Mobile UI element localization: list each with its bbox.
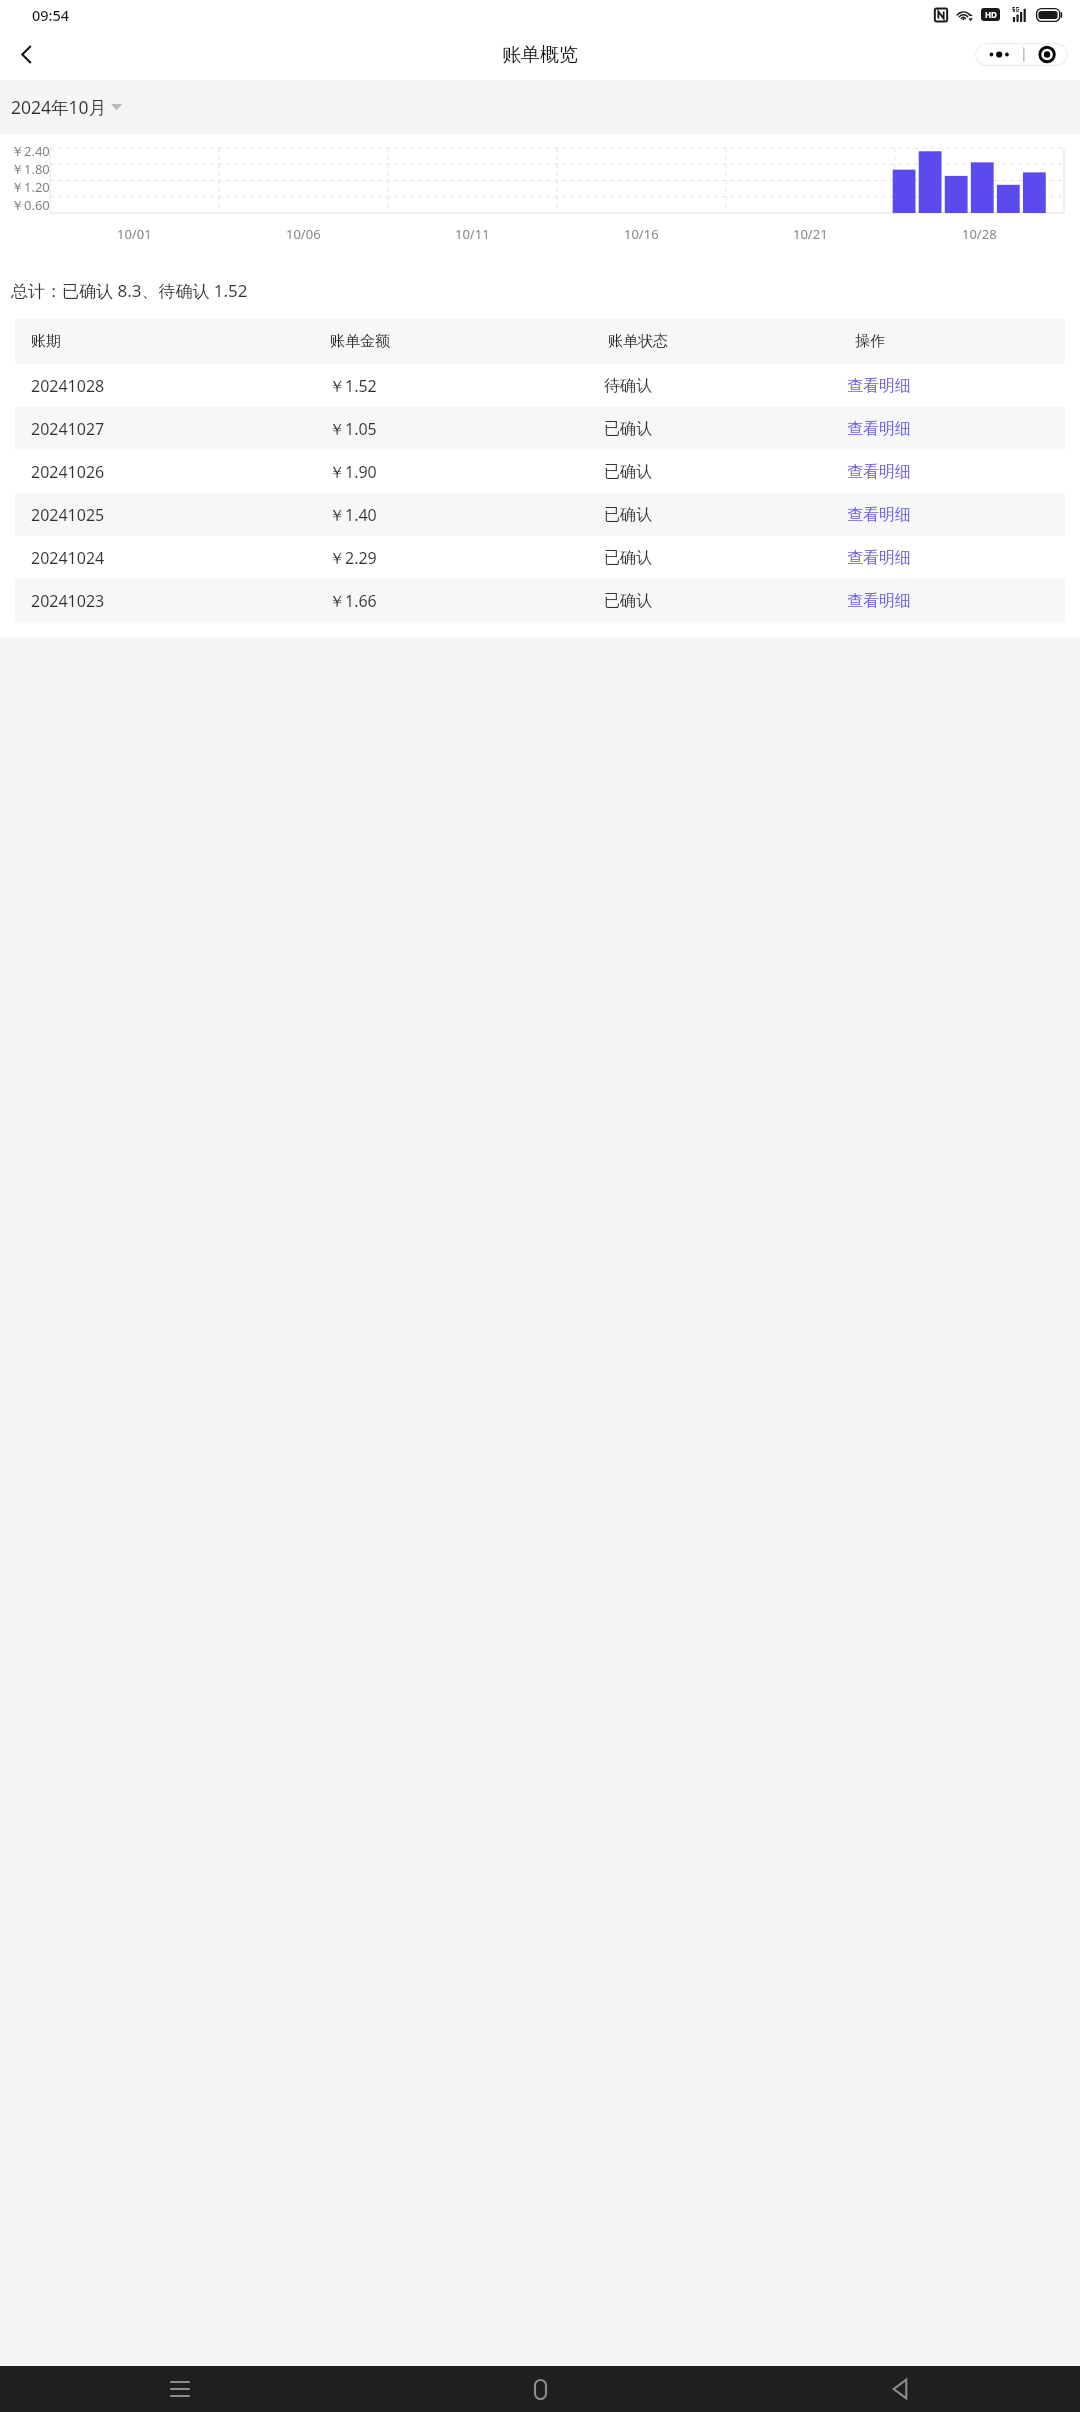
staticText: 已确认 bbox=[604, 548, 652, 568]
staticText: ￥1.80 bbox=[11, 160, 50, 178]
staticText: 10/06 bbox=[286, 225, 321, 243]
staticText: 2024年10月 bbox=[11, 95, 107, 119]
staticText: 操作 bbox=[855, 332, 885, 351]
staticText: ￥1.20 bbox=[11, 178, 50, 196]
staticText: 账单概览 bbox=[502, 43, 578, 67]
button[interactable]: 20241024 bbox=[15, 536, 1065, 579]
staticText: 待确认 bbox=[604, 376, 652, 396]
staticText: 10/16 bbox=[624, 225, 659, 243]
button[interactable]: Mini program menu bbox=[975, 43, 1068, 66]
staticText: ￥1.05 bbox=[329, 418, 377, 440]
button[interactable]: Recents bbox=[0, 2366, 360, 2412]
staticText: 10/01 bbox=[117, 225, 152, 243]
staticText: 已确认 bbox=[604, 505, 652, 525]
staticText: 账单状态 bbox=[608, 332, 668, 351]
staticText: 10/21 bbox=[793, 225, 828, 243]
staticText: 账期 bbox=[31, 332, 61, 351]
staticText: 20241025 bbox=[31, 504, 105, 526]
button[interactable]: 查看明细 bbox=[847, 505, 911, 525]
button[interactable]: 查看明细 bbox=[847, 462, 911, 482]
staticText: 10/11 bbox=[455, 225, 490, 243]
button[interactable]: Back bbox=[720, 2366, 1080, 2412]
staticText: 已确认 bbox=[604, 591, 652, 611]
staticText: 已确认 bbox=[604, 419, 652, 439]
staticText: 20241027 bbox=[31, 418, 105, 440]
staticText: 09:54 bbox=[32, 5, 70, 25]
button[interactable]: Home bbox=[360, 2366, 720, 2412]
button[interactable]: 20241025 bbox=[15, 493, 1065, 536]
staticText: 总计：已确认 8.3、待确认 1.52 bbox=[11, 279, 248, 302]
button[interactable]: 查看明细 bbox=[847, 419, 911, 439]
button[interactable]: 查看明细 bbox=[847, 548, 911, 568]
staticText: 20241024 bbox=[31, 547, 105, 569]
staticText: ￥0.60 bbox=[11, 196, 50, 214]
button[interactable]: 20241026 bbox=[15, 450, 1065, 493]
button[interactable]: Back bbox=[0, 29, 52, 80]
staticText: ￥1.90 bbox=[329, 461, 377, 483]
staticText: ￥1.66 bbox=[329, 590, 377, 612]
button[interactable]: 20241027 bbox=[15, 407, 1065, 450]
staticText: 10/28 bbox=[962, 225, 997, 243]
staticText: HD bbox=[985, 9, 997, 20]
button[interactable]: 查看明细 bbox=[847, 376, 911, 396]
button[interactable]: 20241028 bbox=[15, 364, 1065, 407]
staticText: ￥2.40 bbox=[11, 142, 50, 160]
staticText: 20241028 bbox=[31, 375, 105, 397]
button[interactable]: 2024年10月 bbox=[9, 91, 124, 123]
staticText: 20241023 bbox=[31, 590, 105, 612]
staticText: 已确认 bbox=[604, 462, 652, 482]
staticText: ￥1.52 bbox=[329, 375, 377, 397]
staticText: 账单金额 bbox=[330, 332, 390, 351]
staticText: 20241026 bbox=[31, 461, 105, 483]
staticText: ￥1.40 bbox=[329, 504, 377, 526]
button[interactable]: 查看明细 bbox=[847, 591, 911, 611]
button[interactable]: 20241023 bbox=[15, 579, 1065, 622]
staticText: ￥2.29 bbox=[329, 547, 377, 569]
